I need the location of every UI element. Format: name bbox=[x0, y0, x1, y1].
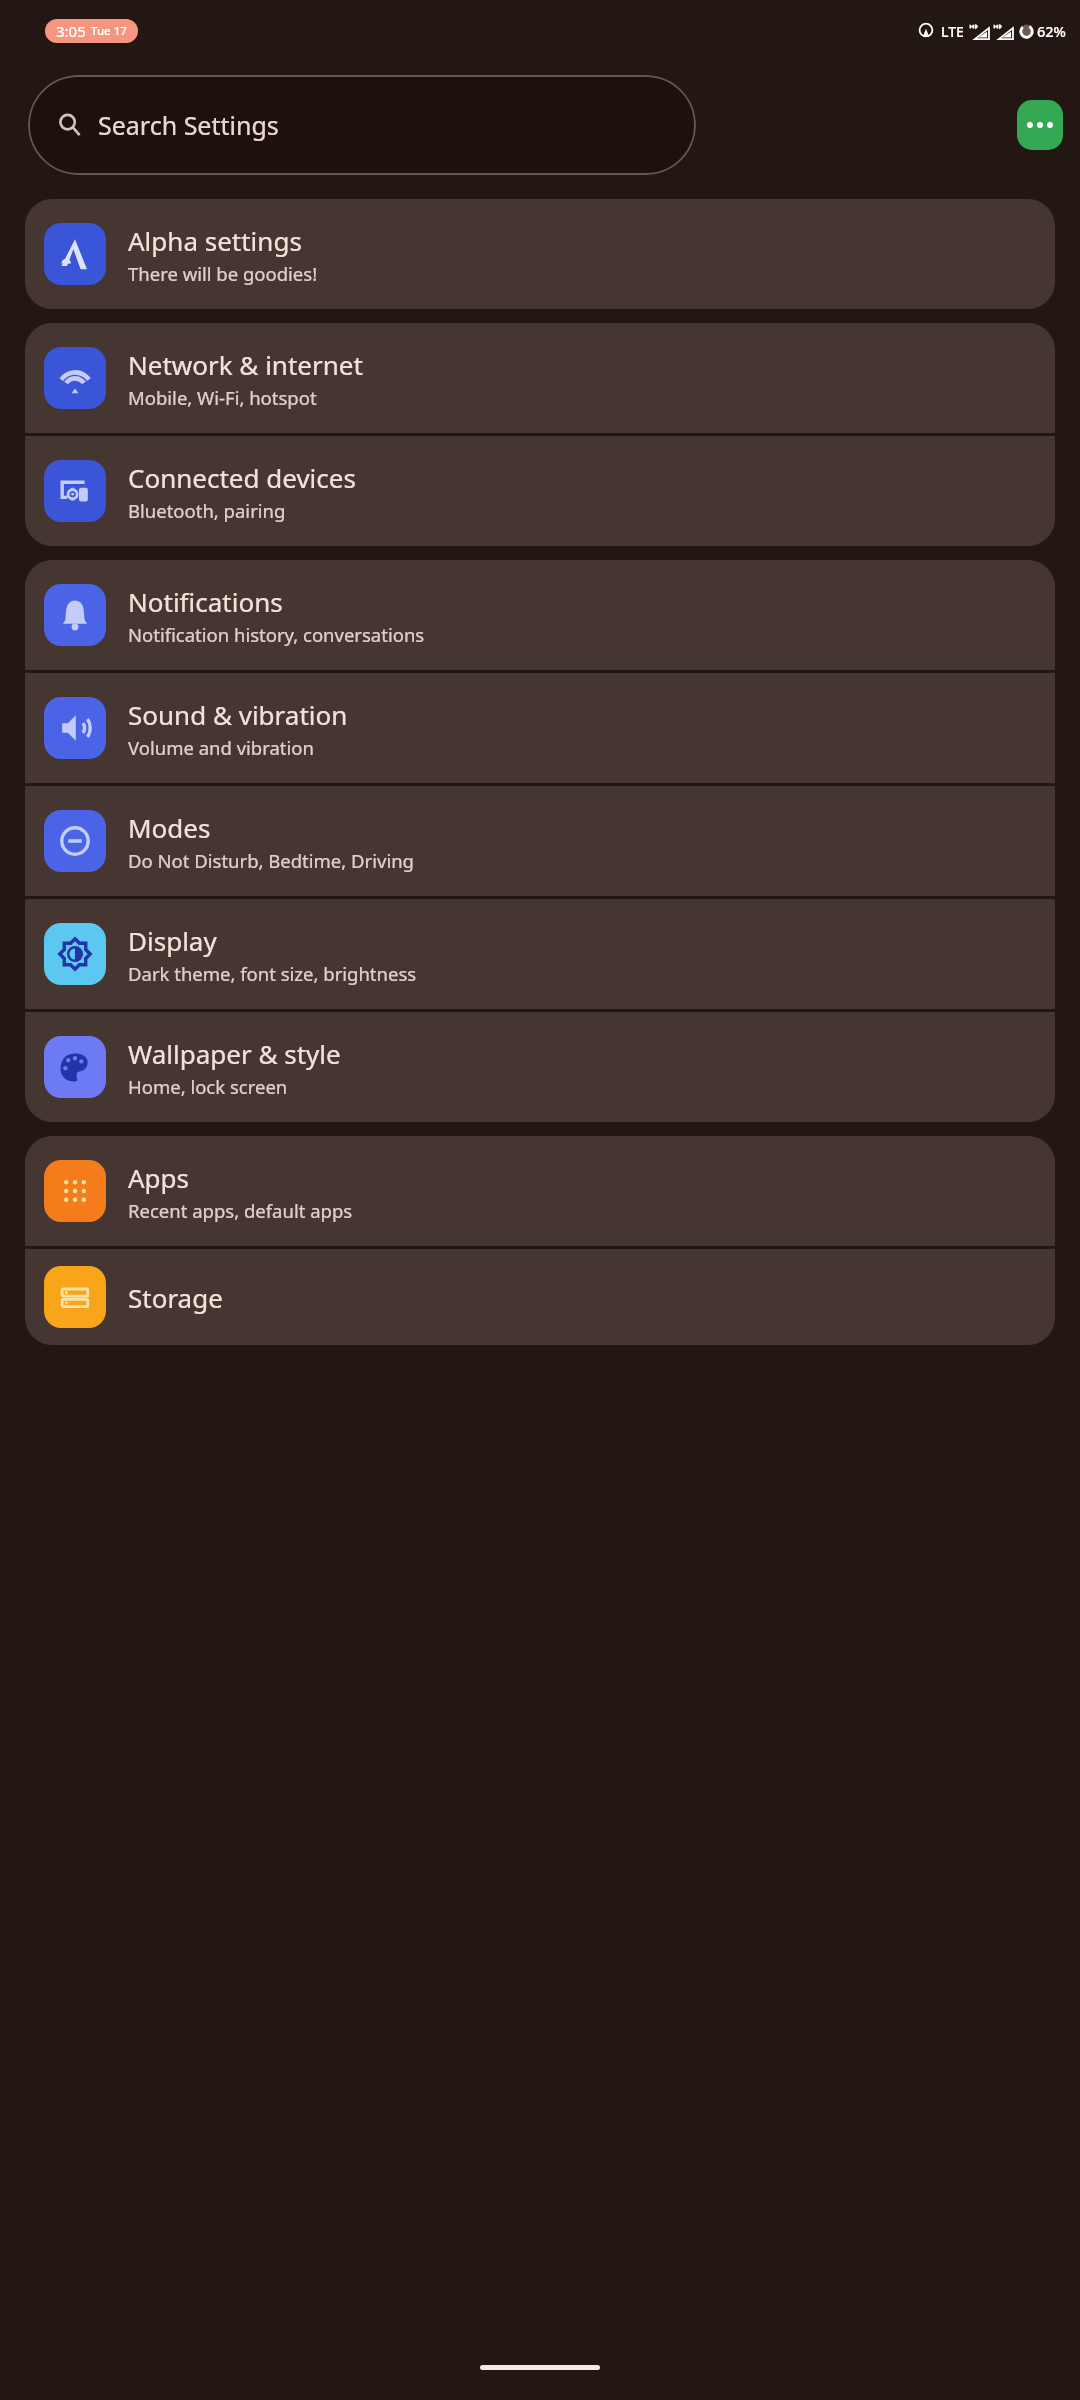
staticText: Mobile, Wi-Fi, hotspot bbox=[128, 385, 317, 410]
staticText: Storage bbox=[128, 1280, 223, 1315]
staticText: Dark theme, font size, brightness bbox=[128, 961, 417, 986]
staticText: Network & internet bbox=[128, 347, 363, 382]
staticText: Do Not Disturb, Bedtime, Driving bbox=[128, 848, 414, 873]
staticText: Notifications bbox=[128, 584, 283, 619]
staticText: Home, lock screen bbox=[128, 1074, 288, 1099]
button[interactable]: Modes bbox=[25, 786, 1055, 896]
button[interactable]: Notifications bbox=[25, 560, 1055, 670]
button[interactable]: Alpha settings bbox=[25, 199, 1055, 309]
button[interactable]: Search Settings bbox=[28, 75, 696, 175]
button[interactable]: More options bbox=[1017, 100, 1063, 150]
staticText: Search Settings bbox=[98, 108, 279, 142]
button[interactable]: Network & internet bbox=[25, 323, 1055, 433]
staticText: Notification history, conversations bbox=[128, 622, 425, 647]
staticText: There will be goodies! bbox=[128, 261, 318, 286]
staticText: Sound & vibration bbox=[128, 697, 348, 732]
staticText: Tue 17 bbox=[91, 23, 127, 39]
staticText: 3:05 bbox=[56, 21, 86, 41]
staticText: 62% bbox=[1037, 21, 1066, 41]
button[interactable]: Wallpaper & style bbox=[25, 1012, 1055, 1122]
staticText: Recent apps, default apps bbox=[128, 1198, 353, 1223]
staticText: Volume and vibration bbox=[128, 735, 314, 760]
staticText: LTE bbox=[941, 22, 964, 41]
staticText: Apps bbox=[128, 1160, 190, 1195]
button[interactable]: Connected devices bbox=[25, 436, 1055, 546]
staticText: Connected devices bbox=[128, 460, 356, 495]
staticText: Bluetooth, pairing bbox=[128, 498, 286, 523]
button[interactable]: Storage bbox=[25, 1249, 1055, 1345]
staticText: Display bbox=[128, 923, 217, 958]
button[interactable]: Apps bbox=[25, 1136, 1055, 1246]
button[interactable]: Display bbox=[25, 899, 1055, 1009]
staticText: Alpha settings bbox=[128, 223, 302, 258]
button[interactable]: Sound & vibration bbox=[25, 673, 1055, 783]
staticText: Wallpaper & style bbox=[128, 1036, 341, 1071]
staticText: Modes bbox=[128, 810, 211, 845]
